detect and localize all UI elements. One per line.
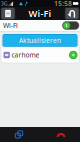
button[interactable]: carhome — [0, 47, 80, 63]
staticText: Aktualisieren — [19, 36, 61, 45]
button[interactable]: Recent apps — [9, 127, 29, 142]
staticText: Wi-Fi — [28, 7, 51, 20]
button[interactable]: End call — [51, 127, 71, 142]
staticText: 3G — [1, 0, 8, 7]
staticText: 15:58 — [54, 0, 72, 8]
staticText: Wi-Fi — [3, 21, 18, 30]
button[interactable]: Menu — [0, 7, 15, 20]
button[interactable]: Aktualisieren — [0, 34, 80, 47]
staticText: carhome — [11, 51, 39, 59]
button[interactable]: Wi-Fi on — [62, 21, 79, 29]
button[interactable]: Back — [64, 7, 79, 20]
